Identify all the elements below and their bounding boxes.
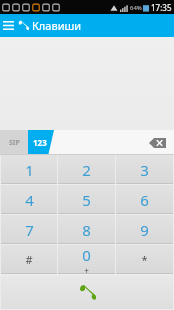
staticText: 3 — [140, 160, 149, 180]
button[interactable]: Call — [1, 276, 173, 309]
staticText: 0 — [82, 245, 91, 265]
button[interactable]: 7 — [1, 215, 57, 244]
staticText: # — [25, 252, 33, 267]
button[interactable]: 4 — [1, 185, 57, 214]
staticText: 5 — [82, 190, 91, 210]
button[interactable]: 2 — [58, 155, 115, 184]
button[interactable]: 1 — [1, 155, 57, 184]
staticText: 4 — [25, 190, 34, 210]
button[interactable]: 5 — [58, 185, 115, 214]
button[interactable]: Menu — [0, 14, 16, 37]
staticText: 1 — [25, 160, 34, 180]
staticText: 64% — [130, 4, 142, 12]
button[interactable]: SIP — [0, 130, 28, 155]
staticText: 8 — [82, 220, 91, 240]
staticText: 6 — [140, 190, 149, 210]
staticText: 17:35 — [151, 2, 172, 13]
staticText: * — [141, 252, 148, 267]
button[interactable]: # — [1, 245, 57, 274]
button[interactable]: 3 — [116, 155, 173, 184]
staticText: 2 — [82, 160, 91, 180]
button[interactable]: 0 — [58, 245, 115, 274]
button[interactable]: 8 — [58, 215, 115, 244]
button[interactable]: * — [116, 245, 173, 274]
button[interactable]: Backspace — [149, 138, 166, 148]
staticText: 123 — [33, 137, 47, 148]
button[interactable]: 9 — [116, 215, 173, 244]
staticText: + — [84, 265, 89, 274]
staticText: 7 — [25, 220, 34, 240]
button[interactable]: 123 — [28, 130, 54, 155]
staticText: 9 — [140, 220, 149, 240]
staticText: Клавиши — [32, 18, 82, 33]
staticText: SIP — [9, 138, 20, 148]
button[interactable]: 6 — [116, 185, 173, 214]
